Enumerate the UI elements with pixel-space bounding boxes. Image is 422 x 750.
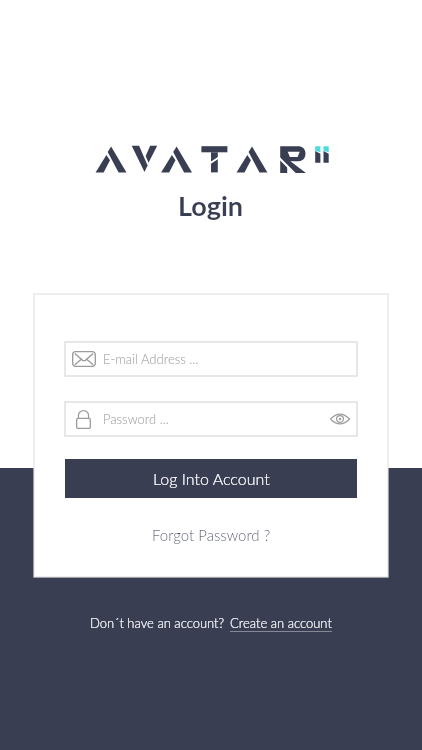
button[interactable]: Forgot Password ? <box>65 498 357 544</box>
staticText: Password ... <box>103 411 169 427</box>
staticText: Don´t have an account? <box>90 615 225 631</box>
button[interactable]: E-mail Address ... <box>65 342 357 376</box>
staticText: Login <box>178 189 244 221</box>
staticText: Create an account <box>230 615 332 631</box>
staticText: E-mail Address ... <box>103 351 199 367</box>
button[interactable]: Show password <box>330 411 350 427</box>
button[interactable]: Create an account <box>230 615 332 631</box>
button[interactable]: Log Into Account <box>65 459 357 498</box>
staticText: Forgot Password ? <box>152 526 271 544</box>
other: Avatar <box>95 145 331 173</box>
button[interactable]: Password ... <box>65 402 357 436</box>
staticText: Log Into Account <box>153 469 270 488</box>
